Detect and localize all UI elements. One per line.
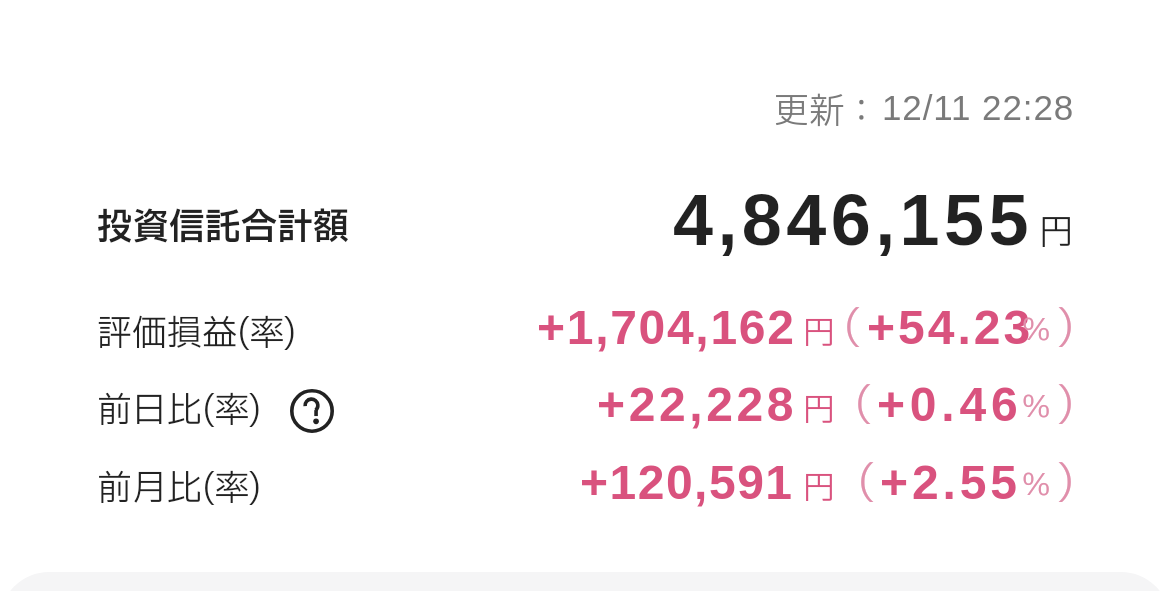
staticText: +120,591 <box>580 456 794 510</box>
staticText: 4,846,155 <box>673 180 1033 260</box>
staticText: （ <box>832 452 876 518</box>
staticText: +2.55 <box>880 456 1021 510</box>
button[interactable]: ヘルプ <box>288 387 336 435</box>
staticText: ） <box>1056 297 1100 363</box>
staticText: 投資信託合計額 <box>97 201 350 255</box>
staticText: 円 <box>803 465 836 513</box>
staticText: +22,228 <box>597 378 798 432</box>
staticText: +1,704,162 <box>537 301 796 355</box>
staticText: 円 <box>1039 208 1073 259</box>
staticText: ％ <box>1021 385 1051 430</box>
staticText: 前日比(率) <box>97 385 262 437</box>
staticText: 円 <box>803 387 836 435</box>
staticText: 12/11 22:28 <box>882 88 1075 127</box>
staticText: 評価損益(率) <box>97 308 297 360</box>
staticText: +54.23 <box>867 301 1034 355</box>
staticText: ％ <box>1021 463 1051 508</box>
staticText: 更新： <box>774 86 880 138</box>
staticText: （ <box>829 374 873 440</box>
staticText: ％ <box>1021 308 1051 353</box>
staticText: ） <box>1056 452 1100 518</box>
staticText: 前月比(率) <box>97 463 262 515</box>
staticText: （ <box>818 297 862 363</box>
staticText: +0.46 <box>877 378 1023 432</box>
staticText: 円 <box>803 310 836 358</box>
staticText: ） <box>1056 374 1100 440</box>
